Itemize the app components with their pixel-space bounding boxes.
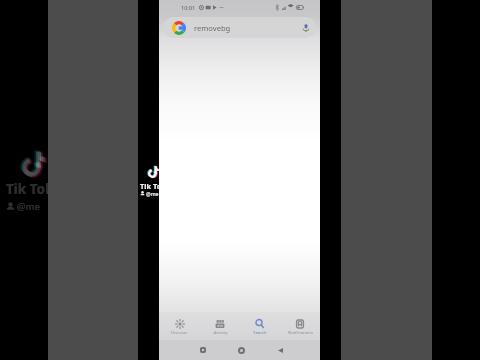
staticText: @me bbox=[17, 200, 40, 213]
button[interactable]: Back bbox=[272, 342, 288, 358]
button[interactable]: Home bbox=[233, 342, 249, 358]
button[interactable]: removebg bbox=[163, 17, 316, 38]
button[interactable]: Voice search bbox=[300, 22, 312, 34]
staticText: Tik Tok bbox=[140, 181, 166, 191]
staticText: Search bbox=[253, 330, 267, 336]
button[interactable]: Discover bbox=[159, 312, 200, 340]
staticText: Activity bbox=[213, 330, 228, 336]
staticText: Discover bbox=[171, 330, 188, 336]
staticText: Notifications bbox=[288, 330, 313, 336]
button[interactable]: Notifications bbox=[280, 312, 320, 340]
button[interactable]: Activity bbox=[200, 312, 240, 340]
staticText: removebg bbox=[194, 23, 231, 33]
button[interactable]: Search bbox=[240, 312, 280, 340]
staticText: Tik Tok bbox=[6, 180, 54, 198]
staticText: 10:01 bbox=[181, 4, 196, 12]
button[interactable]: Recents bbox=[195, 342, 211, 358]
staticText: @me bbox=[146, 190, 159, 197]
